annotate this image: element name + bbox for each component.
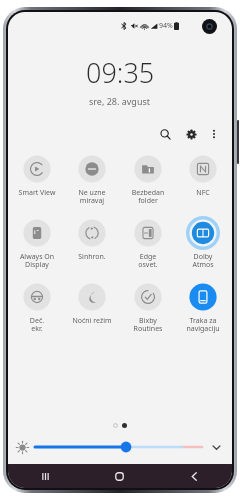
- button[interactable]: Smart View: [10, 151, 64, 199]
- staticText: Edge osvet.: [121, 252, 175, 269]
- button[interactable]: Always On Display: [10, 215, 64, 270]
- button[interactable]: Settings: [180, 123, 202, 145]
- button[interactable]: Search: [154, 123, 176, 145]
- button[interactable]: Sinhron.: [65, 215, 119, 263]
- staticText: Dolby Atmos: [176, 252, 230, 269]
- staticText: Sinhron.: [65, 252, 119, 262]
- button[interactable]: Dolby Atmos: [176, 215, 230, 270]
- button[interactable]: Back: [157, 464, 232, 488]
- button[interactable]: Edge osvet.: [121, 215, 175, 270]
- button[interactable]: NFC: [176, 151, 230, 199]
- button[interactable]: Traka za navigaciju: [176, 279, 230, 334]
- button[interactable]: Ne uzne miravaj: [65, 151, 119, 206]
- button[interactable]: More options: [204, 124, 224, 144]
- staticText: sre, 28. avgust: [89, 95, 151, 107]
- button[interactable]: Expand: [208, 439, 224, 455]
- staticText: 94%: [159, 21, 173, 31]
- button[interactable]: Deč. ekr.: [10, 279, 64, 334]
- staticText: Traka za navigaciju: [176, 316, 230, 333]
- staticText: Deč. ekr.: [10, 316, 64, 333]
- staticText: 09:35: [86, 54, 155, 91]
- button[interactable]: Bixby Routines: [121, 279, 175, 334]
- staticText: Ne uzne miravaj: [65, 188, 119, 205]
- button[interactable]: Brightness: [35, 438, 202, 456]
- button[interactable]: Noćni režim: [65, 279, 119, 327]
- button[interactable]: Home: [82, 464, 157, 488]
- staticText: Smart View: [10, 188, 64, 198]
- staticText: Bixby Routines: [121, 316, 175, 333]
- button[interactable]: Recents: [8, 464, 82, 488]
- staticText: Bezbedan folder: [121, 188, 175, 205]
- staticText: Always On Display: [10, 252, 64, 269]
- button[interactable]: Bezbedan folder: [121, 151, 175, 206]
- staticText: Noćni režim: [65, 316, 119, 326]
- staticText: NFC: [176, 188, 230, 198]
